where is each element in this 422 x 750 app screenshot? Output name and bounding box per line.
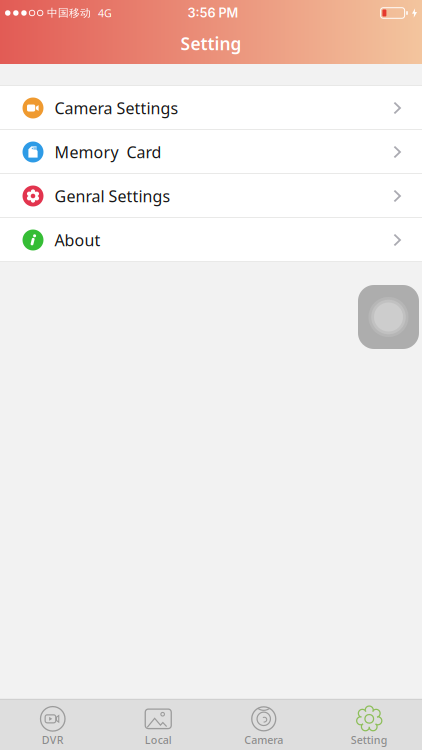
staticText: About [54,229,100,251]
button[interactable]: AssistiveTouch [358,285,419,349]
staticText: Camera Settings [54,97,178,119]
button[interactable]: Local [105,700,211,750]
staticText: Setting [351,733,388,747]
button[interactable]: Camera Settings [0,86,422,130]
button[interactable]: DVR [0,700,105,750]
button[interactable]: Setting [316,700,422,750]
staticText: Genral Settings [54,185,170,207]
staticText: Setting [180,32,241,55]
staticText: 中国移动 [47,6,91,19]
button[interactable]: Camera [211,700,316,750]
staticText: Local [145,733,172,747]
button[interactable]: Genral Settings [0,174,422,218]
staticText: DVR [42,733,64,747]
staticText: 4G [98,6,112,20]
button[interactable]: Memory Card [0,130,422,174]
staticText: Memory Card [54,141,161,163]
staticText: Camera [244,733,283,747]
button[interactable]: About [0,218,422,262]
staticText: 3:56 PM [187,5,238,21]
